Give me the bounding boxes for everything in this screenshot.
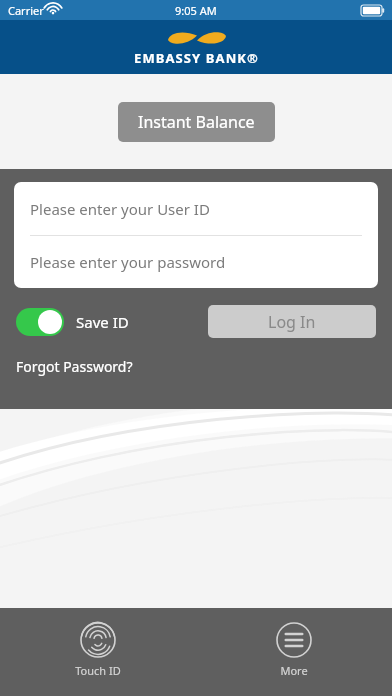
staticText: Log In [268,311,316,333]
button[interactable]: Save ID [16,308,129,336]
staticText: Please enter your password [30,252,226,272]
staticText: EMBASSY BANK® [134,49,259,67]
button[interactable]: Please enter your User ID [14,182,378,235]
staticText: Touch ID [75,663,121,678]
button[interactable]: Log In [208,305,376,338]
button[interactable]: Instant Balance [118,102,275,142]
staticText: Forgot Password? [16,357,133,376]
staticText: Please enter your User ID [30,199,210,219]
staticText: Instant Balance [138,111,255,133]
staticText: Save ID [76,312,129,332]
staticText: More [280,663,308,678]
staticText: 9:05 AM [175,3,217,18]
button[interactable]: Forgot Password? [16,357,133,376]
button[interactable]: More [276,608,312,678]
button[interactable]: Touch ID [75,608,121,678]
button[interactable]: Please enter your password [14,236,378,288]
staticText: Carrier [8,3,44,18]
